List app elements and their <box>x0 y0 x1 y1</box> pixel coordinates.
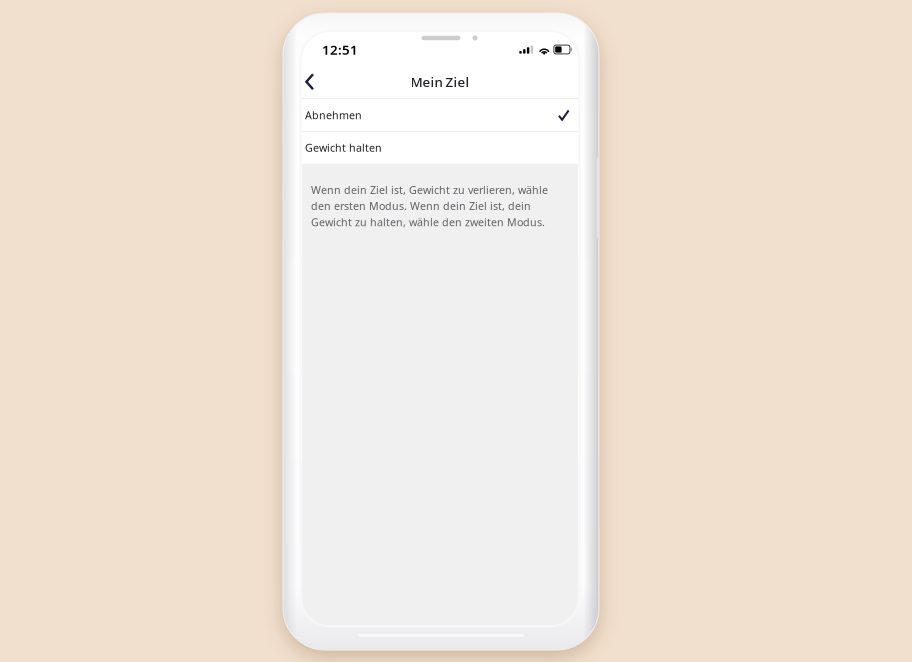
staticText: 12:51 <box>322 41 358 58</box>
staticText: Wenn dein Ziel ist, Gewicht zu verlieren… <box>311 183 548 229</box>
button[interactable]: Gewicht halten <box>302 132 578 164</box>
staticText: Abnehmen <box>305 108 362 122</box>
staticText: Mein Ziel <box>410 73 469 91</box>
button[interactable]: Abnehmen <box>302 99 578 131</box>
staticText: Gewicht halten <box>305 141 382 155</box>
button[interactable]: Back <box>302 65 335 98</box>
